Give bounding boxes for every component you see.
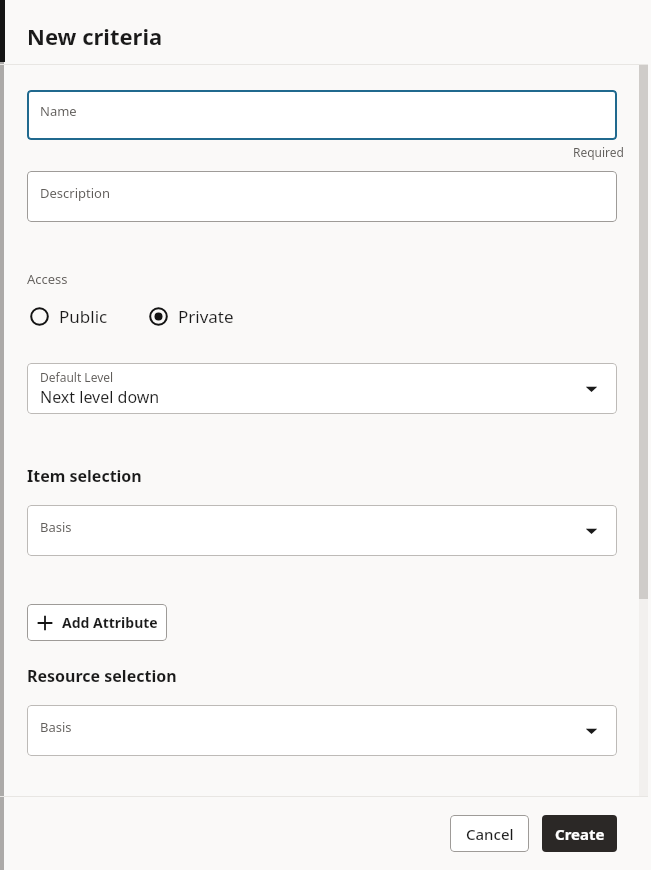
staticText: Name <box>40 102 77 120</box>
staticText: Create <box>555 824 605 844</box>
button[interactable]: Private <box>143 303 240 330</box>
staticText: Public <box>59 305 108 328</box>
staticText: Resource selection <box>27 665 177 687</box>
staticText: Add Attribute <box>62 613 158 632</box>
button[interactable]: Cancel <box>450 815 529 852</box>
staticText: Default Level <box>40 369 114 385</box>
button[interactable]: Default Level <box>27 363 617 414</box>
staticText: Description <box>40 184 110 202</box>
button[interactable]: Add Attribute <box>27 604 167 641</box>
staticText: Next level down <box>40 386 160 408</box>
staticText: Required <box>573 144 624 160</box>
button[interactable]: Name <box>27 90 617 140</box>
staticText: Access <box>27 270 68 288</box>
button[interactable]: Basis <box>27 505 617 556</box>
staticText: Cancel <box>466 824 514 844</box>
staticText: New criteria <box>27 21 163 51</box>
staticText: Basis <box>40 518 72 536</box>
button[interactable]: Description <box>27 171 617 222</box>
button[interactable]: Basis <box>27 705 617 756</box>
staticText: Basis <box>40 718 72 736</box>
button[interactable]: Public <box>24 303 114 330</box>
staticText: Private <box>178 305 234 328</box>
button[interactable]: Create <box>542 815 617 852</box>
staticText: Item selection <box>27 465 142 487</box>
